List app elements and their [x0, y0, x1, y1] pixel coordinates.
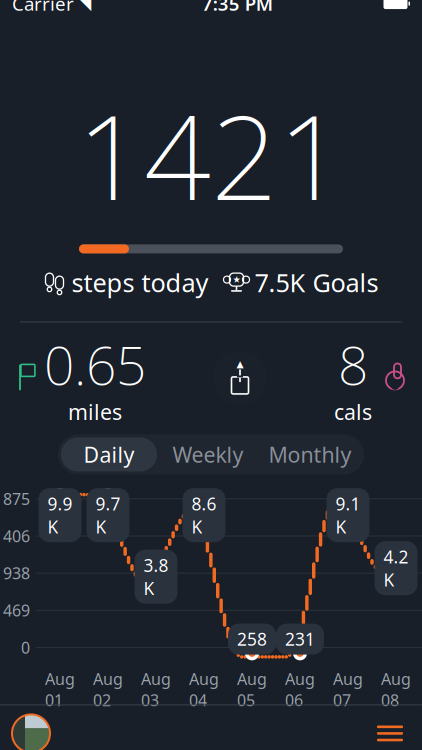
- staticText: Daily: [83, 440, 134, 468]
- staticText: ◥: [79, 0, 91, 13]
- staticText: Aug 02: [93, 668, 123, 711]
- staticText: Weekly: [172, 440, 243, 468]
- button[interactable]: Monthly: [259, 437, 361, 471]
- button[interactable]: Daily: [61, 437, 157, 471]
- staticText: 7:35 PM: [202, 0, 273, 16]
- staticText: 0.65: [44, 329, 146, 400]
- staticText: Aug 07: [333, 668, 363, 711]
- staticText: miles: [68, 398, 122, 426]
- staticText: Aug 05: [237, 668, 267, 711]
- staticText: Aug 03: [141, 668, 171, 711]
- staticText: 406: [3, 525, 30, 546]
- staticText: Aug 01: [45, 668, 75, 711]
- staticText: 9.7K: [95, 492, 120, 538]
- staticText: 469: [3, 600, 30, 621]
- staticText: 938: [3, 562, 30, 584]
- staticText: ▲: [236, 359, 243, 369]
- staticText: 7.5K Goals: [254, 266, 378, 299]
- button[interactable]: Weekly: [157, 437, 259, 471]
- staticText: Aug 04: [189, 668, 219, 711]
- staticText: cals: [334, 398, 372, 426]
- button[interactable]: Profile: [12, 714, 50, 750]
- staticText: 9.9K: [47, 492, 72, 538]
- staticText: 3.8K: [143, 554, 168, 600]
- staticText: 0: [21, 637, 30, 658]
- staticText: 9.1K: [335, 492, 360, 538]
- button[interactable]: Menu: [370, 718, 410, 748]
- button[interactable]: Share: [213, 350, 267, 404]
- staticText: 875: [3, 488, 30, 509]
- staticText: 231: [285, 628, 315, 651]
- staticText: 4.2K: [383, 545, 408, 591]
- staticText: 258: [237, 628, 267, 651]
- staticText: Aug 06: [285, 668, 315, 711]
- staticText: 1421: [77, 77, 345, 232]
- staticText: Monthly: [268, 440, 351, 468]
- staticText: Aug 08: [381, 668, 411, 711]
- staticText: ★: [232, 274, 240, 285]
- staticText: 8.6K: [191, 492, 216, 538]
- staticText: Carrier: [12, 0, 74, 16]
- staticText: 8: [338, 329, 368, 400]
- staticText: steps today: [71, 266, 208, 299]
